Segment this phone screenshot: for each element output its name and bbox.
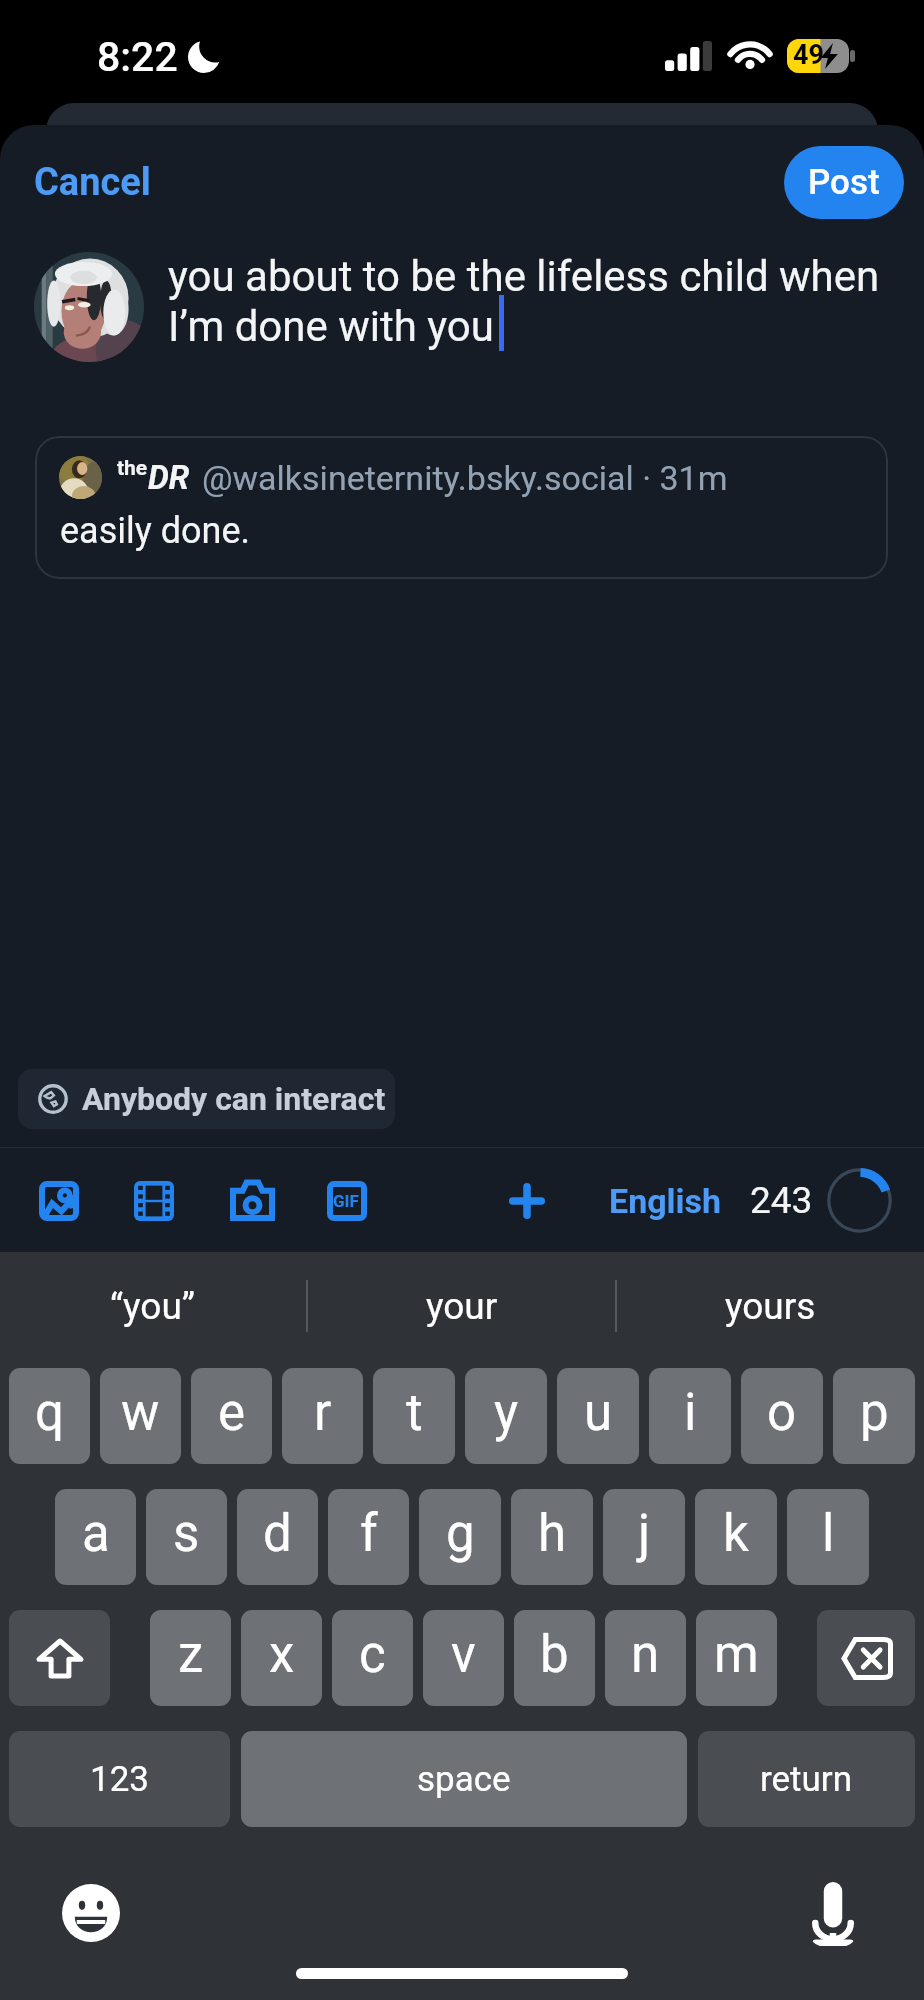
button[interactable]: 123 [9,1731,230,1827]
button[interactable]: a [55,1489,136,1585]
staticText: your [426,1285,498,1328]
button[interactable]: Camera [226,1176,279,1225]
staticText: the [117,456,148,481]
button[interactable]: l [787,1489,869,1585]
button[interactable]: z [150,1610,231,1706]
button[interactable]: o [741,1368,823,1464]
staticText: s [173,1504,200,1564]
staticText: o [767,1383,797,1443]
button[interactable]: Add image [35,1177,83,1225]
button[interactable]: h [511,1489,593,1585]
button[interactable]: k [695,1489,777,1585]
button[interactable]: t [373,1368,455,1464]
staticText: p [860,1383,889,1443]
staticText: f [360,1504,378,1564]
staticText: t [406,1383,423,1443]
staticText: easily done. [60,510,251,552]
staticText: English [609,1181,722,1221]
staticText: r [314,1383,332,1443]
button[interactable]: j [603,1489,685,1585]
staticText: Post [808,162,880,203]
staticText: return [760,1759,853,1800]
staticText: @walksineternity.bsky.social · 31m [202,458,728,498]
staticText: b [540,1625,569,1685]
button[interactable]: u [557,1368,639,1464]
button[interactable]: p [833,1368,915,1464]
staticText: 49 [793,39,824,71]
staticText: 243 [750,1179,813,1222]
staticText: k [723,1504,749,1564]
staticText: 123 [90,1759,150,1800]
button[interactable]: Backspace [817,1610,915,1706]
button[interactable]: y [465,1368,547,1464]
staticText: d [263,1504,292,1564]
staticText: “you” [110,1285,196,1328]
button[interactable]: the [35,436,888,579]
button[interactable]: s [146,1489,227,1585]
staticText: you about to be the lifeless child when … [168,252,894,351]
staticText: x [269,1625,295,1685]
button[interactable]: q [9,1368,90,1464]
button[interactable]: Add GIF [323,1177,371,1225]
button[interactable]: b [514,1610,595,1706]
button[interactable]: Post [784,146,904,219]
staticText: DR [148,458,190,497]
button[interactable]: Shift [9,1610,110,1706]
staticText: g [446,1504,475,1564]
staticText: l [822,1504,835,1564]
staticText: i [684,1383,697,1443]
staticText: e [218,1383,246,1443]
button[interactable]: your [308,1252,615,1360]
button[interactable]: yours [617,1252,924,1360]
staticText: v [451,1625,476,1685]
button[interactable]: m [696,1610,777,1706]
staticText: j [638,1504,651,1564]
button[interactable]: n [605,1610,686,1706]
staticText: m [714,1625,759,1685]
staticText: c [359,1625,386,1685]
staticText: Anybody can interact [82,1080,386,1118]
button[interactable]: d [237,1489,318,1585]
button[interactable]: Emoji keyboard [59,1881,123,1945]
staticText: h [538,1504,567,1564]
staticText: yours [725,1285,816,1328]
staticText: Cancel [34,160,151,205]
button[interactable]: f [328,1489,409,1585]
button[interactable]: c [332,1610,413,1706]
button[interactable]: g [419,1489,501,1585]
staticText: z [178,1625,204,1685]
button[interactable]: Add another post [500,1174,554,1228]
staticText: a [82,1504,110,1564]
button[interactable]: Dictation [801,1877,865,1949]
button[interactable]: “you” [0,1252,306,1360]
button[interactable]: x [241,1610,322,1706]
staticText: w [121,1383,160,1443]
staticText: n [631,1625,660,1685]
button[interactable]: w [100,1368,181,1464]
button[interactable]: space [241,1731,687,1827]
button[interactable]: Cancel [18,148,167,217]
staticText: GIF [333,1191,359,1211]
button[interactable]: e [191,1368,272,1464]
button[interactable]: English [605,1175,726,1227]
button[interactable]: v [423,1610,504,1706]
button[interactable]: return [698,1731,915,1827]
staticText: q [35,1383,64,1443]
staticText: u [584,1383,613,1443]
staticText: y [494,1383,519,1443]
staticText: space [417,1759,511,1800]
button[interactable]: i [649,1368,731,1464]
button[interactable]: Anybody can interact [18,1069,395,1129]
staticText: 8:22 [97,33,178,81]
button[interactable]: r [282,1368,363,1464]
button[interactable]: Add video [130,1177,178,1225]
